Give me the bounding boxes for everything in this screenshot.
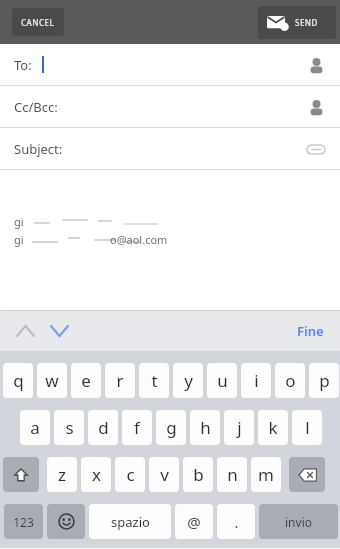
staticText: a [30,416,40,439]
staticText: spazio [111,513,150,531]
button[interactable]: e [71,363,101,398]
staticText: k [268,416,278,439]
staticText: j [237,416,242,439]
button[interactable]: Next field [46,318,72,344]
staticText: invio [285,514,312,530]
button[interactable]: t [139,363,169,398]
button[interactable]: g [156,410,186,445]
staticText: t [151,369,158,392]
button[interactable]: To: [0,44,340,85]
staticText: h [200,416,211,439]
staticText: x [92,463,101,486]
button[interactable]: j [224,410,254,445]
staticText: Cc/Bcc: [14,98,58,116]
button[interactable]: d [88,410,118,445]
button[interactable]: Backspace [289,457,325,492]
button[interactable]: i [241,363,271,398]
staticText: n [227,463,238,486]
staticText: s [65,416,74,439]
button[interactable]: invio [259,504,338,539]
staticText: To: [14,56,32,74]
button[interactable]: a [20,410,50,445]
staticText: q [13,369,24,392]
staticText: o [285,369,296,392]
button[interactable]: o [275,363,305,398]
button[interactable]: v [149,457,179,492]
button[interactable]: m [251,457,281,492]
button[interactable]: u [207,363,237,398]
staticText: gi [14,232,24,247]
button[interactable]: k [258,410,288,445]
button[interactable]: Shift [3,457,39,492]
staticText: Subject: [14,140,63,158]
button[interactable]: Emoji [47,504,85,539]
button[interactable]: l [292,410,322,445]
button[interactable]: r [105,363,135,398]
button[interactable]: n [217,457,247,492]
button[interactable]: q [3,363,33,398]
button[interactable]: Attach file [302,135,330,163]
staticText: d [98,416,109,439]
staticText: g [166,416,177,439]
button[interactable]: f [122,410,152,445]
button[interactable]: z [47,457,77,492]
staticText: m [258,463,274,486]
staticText: p [319,369,330,392]
button[interactable]: Choose contact [302,93,330,121]
button[interactable]: 123 [4,504,43,539]
button[interactable]: Cc/Bcc: [0,86,340,127]
staticText: v [160,463,169,486]
staticText: SEND [295,17,318,28]
button[interactable]: Subject: [0,128,340,169]
staticText: l [305,416,310,439]
button[interactable]: SEND [258,6,336,39]
staticText: . [234,512,239,532]
staticText: r [116,369,124,392]
staticText: y [184,369,193,392]
button[interactable]: c [115,457,145,492]
button[interactable]: spazio [89,504,171,539]
staticText: o@aol.com [110,232,168,247]
staticText: f [134,416,140,439]
staticText: @ [187,512,201,532]
button[interactable]: p [309,363,339,398]
button[interactable]: Fine [291,318,330,344]
staticText: z [58,463,66,486]
button[interactable]: CANCEL [12,8,64,36]
staticText: u [217,369,228,392]
button[interactable]: s [54,410,84,445]
button[interactable]: . [217,504,255,539]
staticText: i [254,369,259,392]
button[interactable]: x [81,457,111,492]
staticText: c [126,463,135,486]
button[interactable]: Previous field [12,318,38,344]
button[interactable]: y [173,363,203,398]
button[interactable]: @ [175,504,213,539]
button[interactable]: b [183,457,213,492]
button[interactable]: h [190,410,220,445]
button[interactable]: w [37,363,67,398]
button[interactable]: gi [0,170,340,310]
staticText: Fine [297,322,324,340]
staticText: w [45,369,59,392]
staticText: 123 [13,514,34,530]
staticText: e [81,369,91,392]
button[interactable]: Choose contact [302,51,330,79]
staticText: CANCEL [21,17,55,28]
staticText: gi [14,214,24,229]
staticText: b [193,463,204,486]
